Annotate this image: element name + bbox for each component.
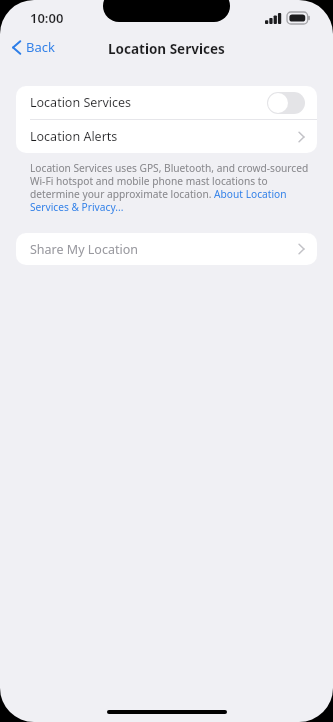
button[interactable]: Location Services bbox=[16, 86, 317, 119]
staticText: Share My Location bbox=[30, 241, 138, 258]
staticText: 10:00 bbox=[30, 9, 64, 27]
button[interactable]: Back bbox=[8, 35, 59, 59]
staticText: Location Services uses GPS, Bluetooth, a… bbox=[30, 161, 315, 214]
button[interactable]: Share My Location bbox=[16, 233, 317, 265]
staticText: Location Services bbox=[30, 94, 132, 111]
button[interactable]: Location Services toggle bbox=[267, 92, 305, 114]
staticText: Location Services bbox=[108, 40, 225, 58]
button[interactable]: Location Alerts bbox=[16, 120, 317, 153]
staticText: Location Alerts bbox=[30, 128, 118, 145]
staticText: Back bbox=[26, 38, 55, 56]
